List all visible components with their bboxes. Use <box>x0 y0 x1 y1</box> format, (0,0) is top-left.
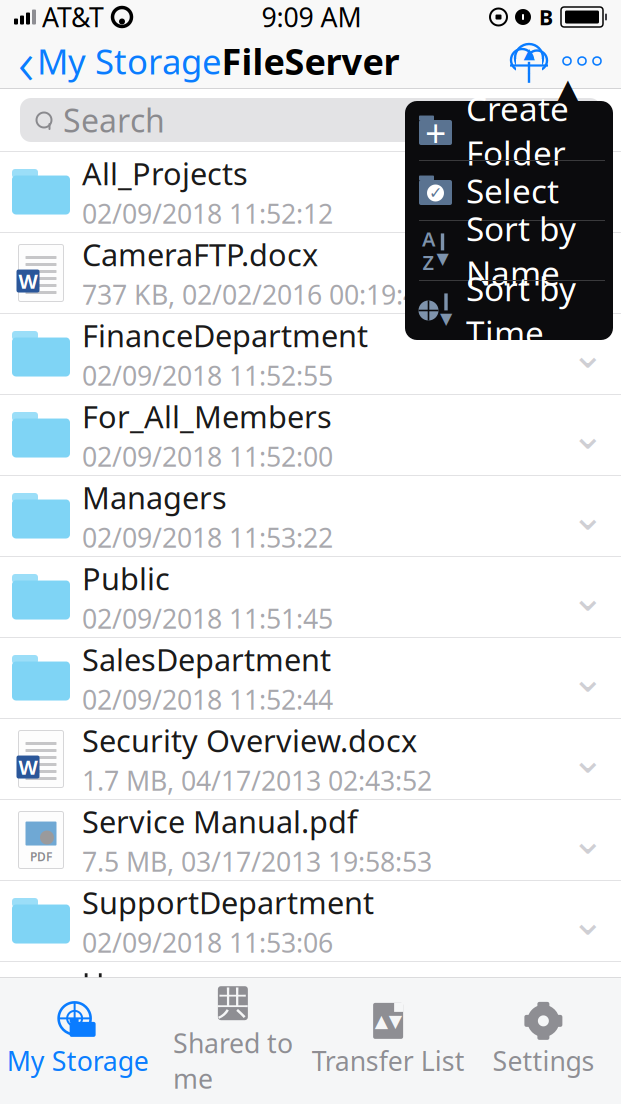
staticText: 02/09/2018 11:52:00 <box>82 439 333 474</box>
staticText: Security Overview.docx <box>82 720 417 761</box>
staticText: SupportDepartment <box>82 882 374 923</box>
button[interactable]: Users <box>0 962 621 1043</box>
staticText: ▼ <box>440 309 452 328</box>
staticText: ⌄ <box>571 817 605 863</box>
button[interactable]: ▲ <box>310 996 466 1086</box>
staticText: ▲ <box>523 45 534 62</box>
staticText: PDF <box>30 848 52 864</box>
staticText: Sort by Name <box>466 206 576 295</box>
staticText: Sort by Time <box>466 266 576 355</box>
button[interactable]: Public <box>0 557 621 638</box>
staticText: 02/09/2018 11:53:22 <box>82 520 333 555</box>
staticText: A <box>422 225 435 252</box>
staticText: ⌄ <box>571 493 605 539</box>
staticText: Z <box>422 249 434 276</box>
staticText: 737 KB, 02/02/2016 00:19:40 <box>82 277 433 312</box>
button[interactable]: FinanceDepartment <box>0 314 621 395</box>
staticText: ⌄ <box>571 736 605 782</box>
button[interactable]: + <box>405 101 613 160</box>
staticText: FinanceDepartment <box>82 315 368 356</box>
staticText: Create Folder <box>466 86 569 175</box>
staticText: FileServer <box>221 37 399 85</box>
button[interactable]: ‹ <box>10 16 230 106</box>
staticText: ▼ <box>436 249 448 268</box>
button[interactable]: SupportDepartment <box>0 881 621 962</box>
staticText: ▲ <box>375 1011 388 1031</box>
staticText: W <box>18 268 37 294</box>
staticText: W <box>18 754 37 780</box>
button[interactable]: SalesDepartment <box>0 638 621 719</box>
staticText: Shared to me <box>173 1025 293 1096</box>
staticText: 共 <box>217 983 249 1023</box>
staticText: 02/09/2018 11:52:44 <box>82 682 333 717</box>
staticText: SalesDepartment <box>82 639 331 680</box>
staticText: Select <box>466 168 559 213</box>
button[interactable]: For_All_Members <box>0 395 621 476</box>
staticText: Search <box>63 99 165 141</box>
staticText: 9:09 AM <box>261 0 361 35</box>
staticText: My Storage <box>7 1043 149 1078</box>
staticText: ⌄ <box>571 331 605 377</box>
staticText: For_All_Members <box>82 396 332 437</box>
staticText: ‹ <box>18 20 34 102</box>
staticText: Users <box>82 963 164 1004</box>
staticText: All_Projects <box>82 153 248 194</box>
staticText: 02/09/2018 11:52:55 <box>82 358 333 393</box>
staticText: Settings <box>492 1043 594 1078</box>
staticText: 02/09/2018 11:52:12 <box>82 196 333 231</box>
button[interactable]: Upload <box>505 41 553 81</box>
button[interactable]: All_Projects <box>0 152 621 233</box>
staticText: 02/09/2018 11:56:50 <box>82 1006 333 1041</box>
staticText: Service Manual.pdf <box>82 801 358 842</box>
staticText: Public <box>82 558 170 599</box>
button[interactable]: A <box>405 221 613 280</box>
button[interactable]: PDF <box>0 800 621 881</box>
staticText: Transfer List <box>312 1043 465 1078</box>
staticText: 02/09/2018 11:53:06 <box>82 925 333 960</box>
staticText: ⌄ <box>571 898 605 944</box>
staticText: 02/09/2018 11:51:45 <box>82 601 333 636</box>
staticText: CameraFTP.docx <box>82 234 318 275</box>
button[interactable]: Search <box>20 98 601 142</box>
button[interactable]: Settings <box>466 996 621 1086</box>
button[interactable]: 共 <box>155 978 310 1104</box>
staticText: ⌄ <box>571 655 605 701</box>
staticText: ▲ <box>552 70 583 115</box>
staticText: ▼ <box>389 1011 402 1031</box>
staticText: 7.5 MB, 03/17/2013 19:58:53 <box>82 844 432 879</box>
staticText: AT&T <box>42 0 104 35</box>
staticText: Managers <box>82 477 227 518</box>
button[interactable]: ▼ <box>405 281 613 340</box>
button[interactable]: Managers <box>0 476 621 557</box>
staticText: B <box>539 3 553 31</box>
staticText: ✓ <box>429 184 442 202</box>
button[interactable]: ✓ <box>405 161 613 220</box>
staticText: My Storage <box>37 38 222 84</box>
staticText: 1.7 MB, 04/17/2013 02:43:52 <box>82 763 432 798</box>
button[interactable]: W <box>0 233 621 314</box>
button[interactable]: W <box>0 719 621 800</box>
staticText: ⌄ <box>571 574 605 620</box>
staticText: + <box>425 108 446 157</box>
staticText: ⌄ <box>571 412 605 458</box>
button[interactable]: My Storage <box>0 996 155 1086</box>
button[interactable]: More options <box>553 41 611 81</box>
